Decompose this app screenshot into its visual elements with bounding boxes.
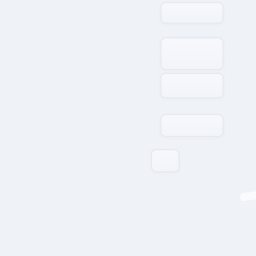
button[interactable] bbox=[151, 150, 179, 172]
button[interactable] bbox=[161, 38, 223, 70]
